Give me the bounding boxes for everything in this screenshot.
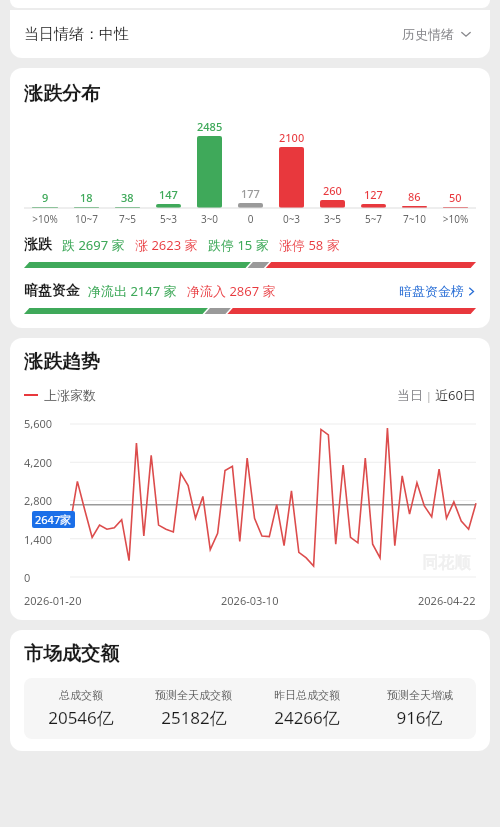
staticText: 7~5: [107, 212, 148, 226]
staticText: 市场成交额: [24, 642, 119, 666]
staticText: 86: [408, 189, 421, 204]
staticText: 5~7: [353, 212, 394, 226]
staticText: 上涨家数: [44, 387, 96, 403]
staticText: 当日情绪：中性: [24, 25, 129, 44]
staticText: 25182亿: [161, 706, 227, 729]
staticText: 2647家: [35, 512, 72, 527]
staticText: 147: [159, 187, 178, 202]
staticText: >10%: [24, 212, 66, 226]
staticText: 同花顺: [422, 553, 470, 573]
staticText: 38: [121, 190, 134, 205]
button[interactable]: 暗盘资金榜: [399, 283, 476, 299]
staticText: 1,400: [24, 532, 53, 547]
staticText: 净流入 2867 家: [187, 282, 276, 300]
staticText: 涨跌分布: [24, 82, 100, 106]
staticText: 总成交额: [59, 688, 103, 702]
staticText: 5~3: [148, 212, 189, 226]
staticText: 昨日总成交额: [274, 688, 340, 702]
staticText: 3~5: [312, 212, 353, 226]
staticText: 260: [323, 183, 342, 198]
staticText: 0~3: [271, 212, 312, 226]
staticText: 跌 2697 家: [62, 236, 125, 254]
staticText: 暗盘资金榜: [399, 283, 464, 299]
staticText: 净流出 2147 家: [88, 282, 177, 300]
staticText: 跌停 15 家: [208, 236, 269, 254]
staticText: 0: [24, 570, 31, 585]
staticText: 2026-04-22: [418, 593, 476, 608]
staticText: 3~0: [189, 212, 230, 226]
staticText: 2026-01-20: [24, 593, 82, 608]
staticText: 20546亿: [48, 706, 114, 729]
button[interactable]: 近60日: [435, 386, 476, 404]
staticText: 预测全天成交额: [155, 688, 232, 702]
staticText: |: [423, 388, 435, 403]
staticText: 暗盘资金: [24, 282, 80, 300]
staticText: 9: [42, 190, 49, 205]
button[interactable]: 当日: [397, 387, 423, 403]
staticText: 5,600: [24, 416, 53, 431]
staticText: 近60日: [435, 386, 476, 404]
staticText: 24266亿: [274, 706, 340, 729]
staticText: 当日: [397, 387, 423, 403]
staticText: >10%: [435, 212, 476, 226]
staticText: 2485: [197, 119, 223, 134]
staticText: 2,800: [24, 493, 53, 508]
staticText: 18: [80, 190, 93, 205]
staticText: 历史情绪: [402, 26, 454, 42]
staticText: 预测全天增减: [387, 688, 453, 702]
staticText: 7~10: [394, 212, 435, 226]
staticText: 0: [230, 212, 271, 226]
staticText: 50: [449, 190, 462, 205]
staticText: 2100: [279, 130, 305, 145]
staticText: 177: [241, 186, 260, 201]
staticText: 10~7: [66, 212, 107, 226]
button[interactable]: 历史情绪: [398, 22, 476, 46]
staticText: 涨 2623 家: [135, 236, 198, 254]
staticText: 涨跌: [24, 236, 52, 254]
staticText: 涨跌趋势: [24, 350, 100, 374]
staticText: 127: [364, 187, 383, 202]
staticText: 涨停 58 家: [279, 236, 340, 254]
staticText: 4,200: [24, 455, 53, 470]
staticText: 2026-03-10: [221, 593, 279, 608]
staticText: 916亿: [396, 706, 443, 729]
